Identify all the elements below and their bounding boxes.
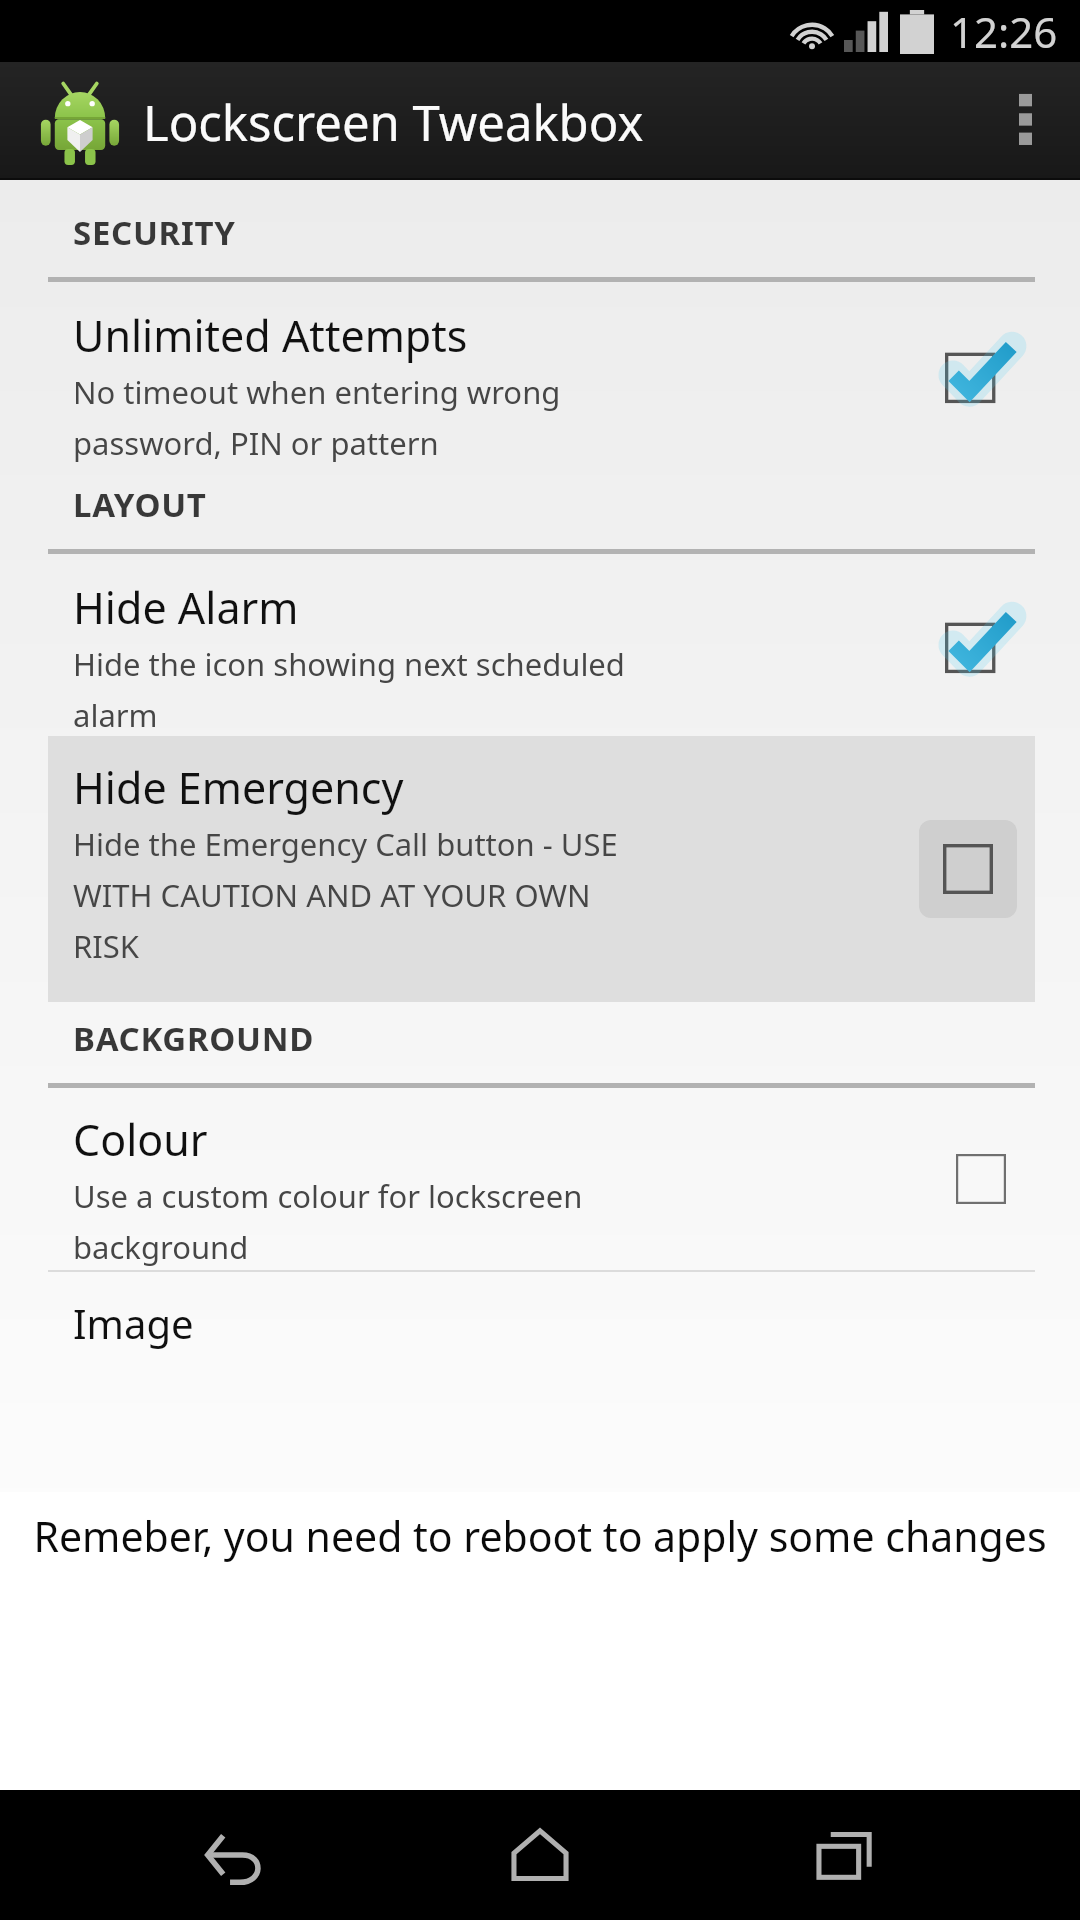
button[interactable]: Home [450,1790,630,1920]
staticText: Hide the icon showing next scheduled ala… [73,643,625,736]
staticText: Hide the Emergency Call button - USE WIT… [73,823,618,967]
staticText: BACKGROUND [73,1016,315,1061]
button[interactable]: More options [970,62,1080,180]
button[interactable]: Back [145,1790,325,1920]
staticText: No timeout when entering wrong password,… [73,371,561,464]
staticText: Hide Alarm [73,578,299,637]
staticText: SECURITY [73,210,236,255]
button[interactable]: Colour [945,1143,1017,1215]
staticText: 12:26 [950,3,1058,60]
button[interactable]: Unlimited Attempts [945,339,1017,411]
button[interactable]: Recents [755,1790,935,1920]
staticText: Image [73,1296,194,1350]
staticText: LAYOUT [73,482,207,527]
staticText: Remeber, you need to reboot to apply som… [16,1508,1064,1564]
staticText: Hide Emergency [73,758,404,817]
button[interactable]: Hide Emergency [919,820,1017,918]
button[interactable]: Hide Alarm [945,609,1017,681]
button[interactable]: Hide Alarm [48,554,1035,736]
staticText: Use a custom colour for lockscreen backg… [73,1175,583,1268]
button[interactable]: Unlimited Attempts [48,282,1035,468]
staticText: Lockscreen Tweakbox [143,89,644,156]
button[interactable]: Hide Emergency [48,736,1035,1002]
staticText: Unlimited Attempts [73,306,468,365]
staticText: Colour [73,1110,208,1169]
button[interactable]: Colour [48,1088,1035,1270]
